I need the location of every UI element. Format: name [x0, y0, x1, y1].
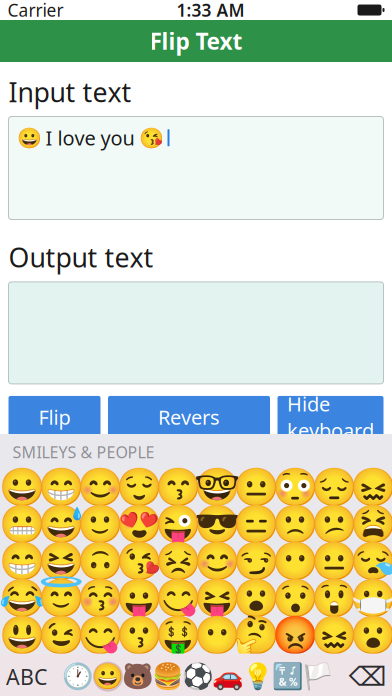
button[interactable]: Emoji: [119, 617, 158, 654]
staticText: 😘: [138, 126, 163, 149]
staticText: 🤑: [155, 614, 201, 656]
staticText: 😙: [155, 466, 201, 508]
button[interactable]: Emoji: [41, 543, 80, 580]
button[interactable]: Emoji: [353, 580, 392, 617]
staticText: Output text: [8, 239, 153, 275]
button[interactable]: Emoji: [197, 617, 236, 654]
button[interactable]: Emoji category: [93, 654, 123, 696]
button[interactable]: Emoji: [2, 506, 41, 543]
button[interactable]: Emoji: [314, 469, 353, 506]
button[interactable]: Emoji: [80, 506, 119, 543]
button[interactable]: Delete: [342, 654, 392, 696]
button[interactable]: Emoji: [314, 543, 353, 580]
staticText: 🤓: [194, 466, 240, 508]
staticText: 💡: [242, 662, 274, 691]
button[interactable]: Emoji: [353, 617, 392, 654]
staticText: 😝: [194, 577, 240, 619]
button[interactable]: Revers: [108, 396, 270, 438]
button[interactable]: Emoji: [2, 543, 41, 580]
button[interactable]: Emoji: [119, 543, 158, 580]
staticText: 🙂: [77, 503, 123, 545]
staticText: ⚽️: [182, 662, 214, 691]
button[interactable]: Emoji: [197, 469, 236, 506]
button[interactable]: Emoji: [275, 580, 314, 617]
staticText: 😐: [311, 540, 357, 582]
button[interactable]: Emoji: [314, 580, 353, 617]
staticText: 😔: [311, 466, 357, 508]
staticText: 😍: [116, 503, 162, 545]
button[interactable]: Emoji: [314, 617, 353, 654]
button[interactable]: Emoji: [197, 543, 236, 580]
button[interactable]: Emoji: [41, 506, 80, 543]
button[interactable]: Emoji: [119, 506, 158, 543]
button[interactable]: Emoji: [158, 506, 197, 543]
button[interactable]: Emoji category: [303, 654, 333, 696]
staticText: 😎: [194, 503, 240, 545]
button[interactable]: Flip: [8, 396, 100, 438]
button[interactable]: Emoji: [236, 580, 275, 617]
button[interactable]: Emoji: [2, 617, 41, 654]
button[interactable]: Emoji: [197, 506, 236, 543]
button[interactable]: Emoji category: [213, 654, 243, 696]
staticText: I love you: [45, 124, 134, 151]
staticText: 😛: [116, 577, 162, 619]
staticText: 😀: [16, 126, 41, 149]
button[interactable]: Emoji: [353, 506, 392, 543]
button[interactable]: Hide keyboard: [277, 396, 383, 438]
staticText: 😯: [272, 577, 318, 619]
button[interactable]: Emoji: [353, 469, 392, 506]
staticText: 😖: [350, 466, 392, 508]
button[interactable]: Emoji: [236, 617, 275, 654]
staticText: 😋: [155, 577, 201, 619]
staticText: ⌫: [348, 661, 386, 692]
button[interactable]: Emoji: [314, 506, 353, 543]
staticText: 🏳️: [302, 662, 334, 691]
staticText: 😬: [0, 503, 45, 545]
staticText: 🕐: [62, 662, 94, 691]
button[interactable]: Emoji category: [123, 654, 153, 696]
button[interactable]: Emoji: [158, 617, 197, 654]
staticText: 🚗: [212, 662, 244, 691]
staticText: 😮: [233, 577, 279, 619]
button[interactable]: Emoji: [119, 469, 158, 506]
button[interactable]: Emoji: [2, 580, 41, 617]
button[interactable]: Emoji: [41, 617, 80, 654]
button[interactable]: Emoji: [80, 543, 119, 580]
button[interactable]: Emoji: [275, 617, 314, 654]
button[interactable]: Emoji: [158, 543, 197, 580]
button[interactable]: Emoji category: [63, 654, 93, 696]
button[interactable]: Emoji: [2, 469, 41, 506]
button[interactable]: Emoji: [236, 506, 275, 543]
staticText: 😕: [311, 503, 357, 545]
staticText: 😊: [77, 466, 123, 508]
button[interactable]: Emoji category: [243, 654, 273, 696]
button[interactable]: Emoji: [80, 469, 119, 506]
button[interactable]: Emoji: [353, 543, 392, 580]
button[interactable]: Emoji: [158, 469, 197, 506]
staticText: 🐻: [122, 662, 154, 691]
button[interactable]: Emoji: [236, 543, 275, 580]
button[interactable]: Emoji category: [183, 654, 213, 696]
button[interactable]: Emoji: [275, 543, 314, 580]
staticText: 😳: [272, 466, 318, 508]
button[interactable]: Emoji: [80, 617, 119, 654]
button[interactable]: Emoji: [236, 469, 275, 506]
staticText: 😅: [38, 503, 84, 545]
staticText: 😘: [116, 540, 162, 582]
button[interactable]: Emoji category: [273, 654, 303, 696]
button[interactable]: Emoji: [119, 580, 158, 617]
button[interactable]: Emoji: [275, 506, 314, 543]
button[interactable]: Emoji: [41, 469, 80, 506]
staticText: 🔣: [272, 662, 304, 691]
staticText: 1:33 AM: [176, 0, 244, 21]
button[interactable]: Emoji category: [153, 654, 183, 696]
button[interactable]: Emoji: [197, 580, 236, 617]
button[interactable]: Emoji: [41, 580, 80, 617]
staticText: 😉: [38, 614, 84, 656]
button[interactable]: Emoji: [275, 469, 314, 506]
button[interactable]: ABC: [0, 654, 53, 696]
staticText: 😆: [38, 540, 84, 582]
button[interactable]: Emoji: [158, 580, 197, 617]
button[interactable]: Emoji: [80, 580, 119, 617]
staticText: 😃: [0, 614, 45, 656]
